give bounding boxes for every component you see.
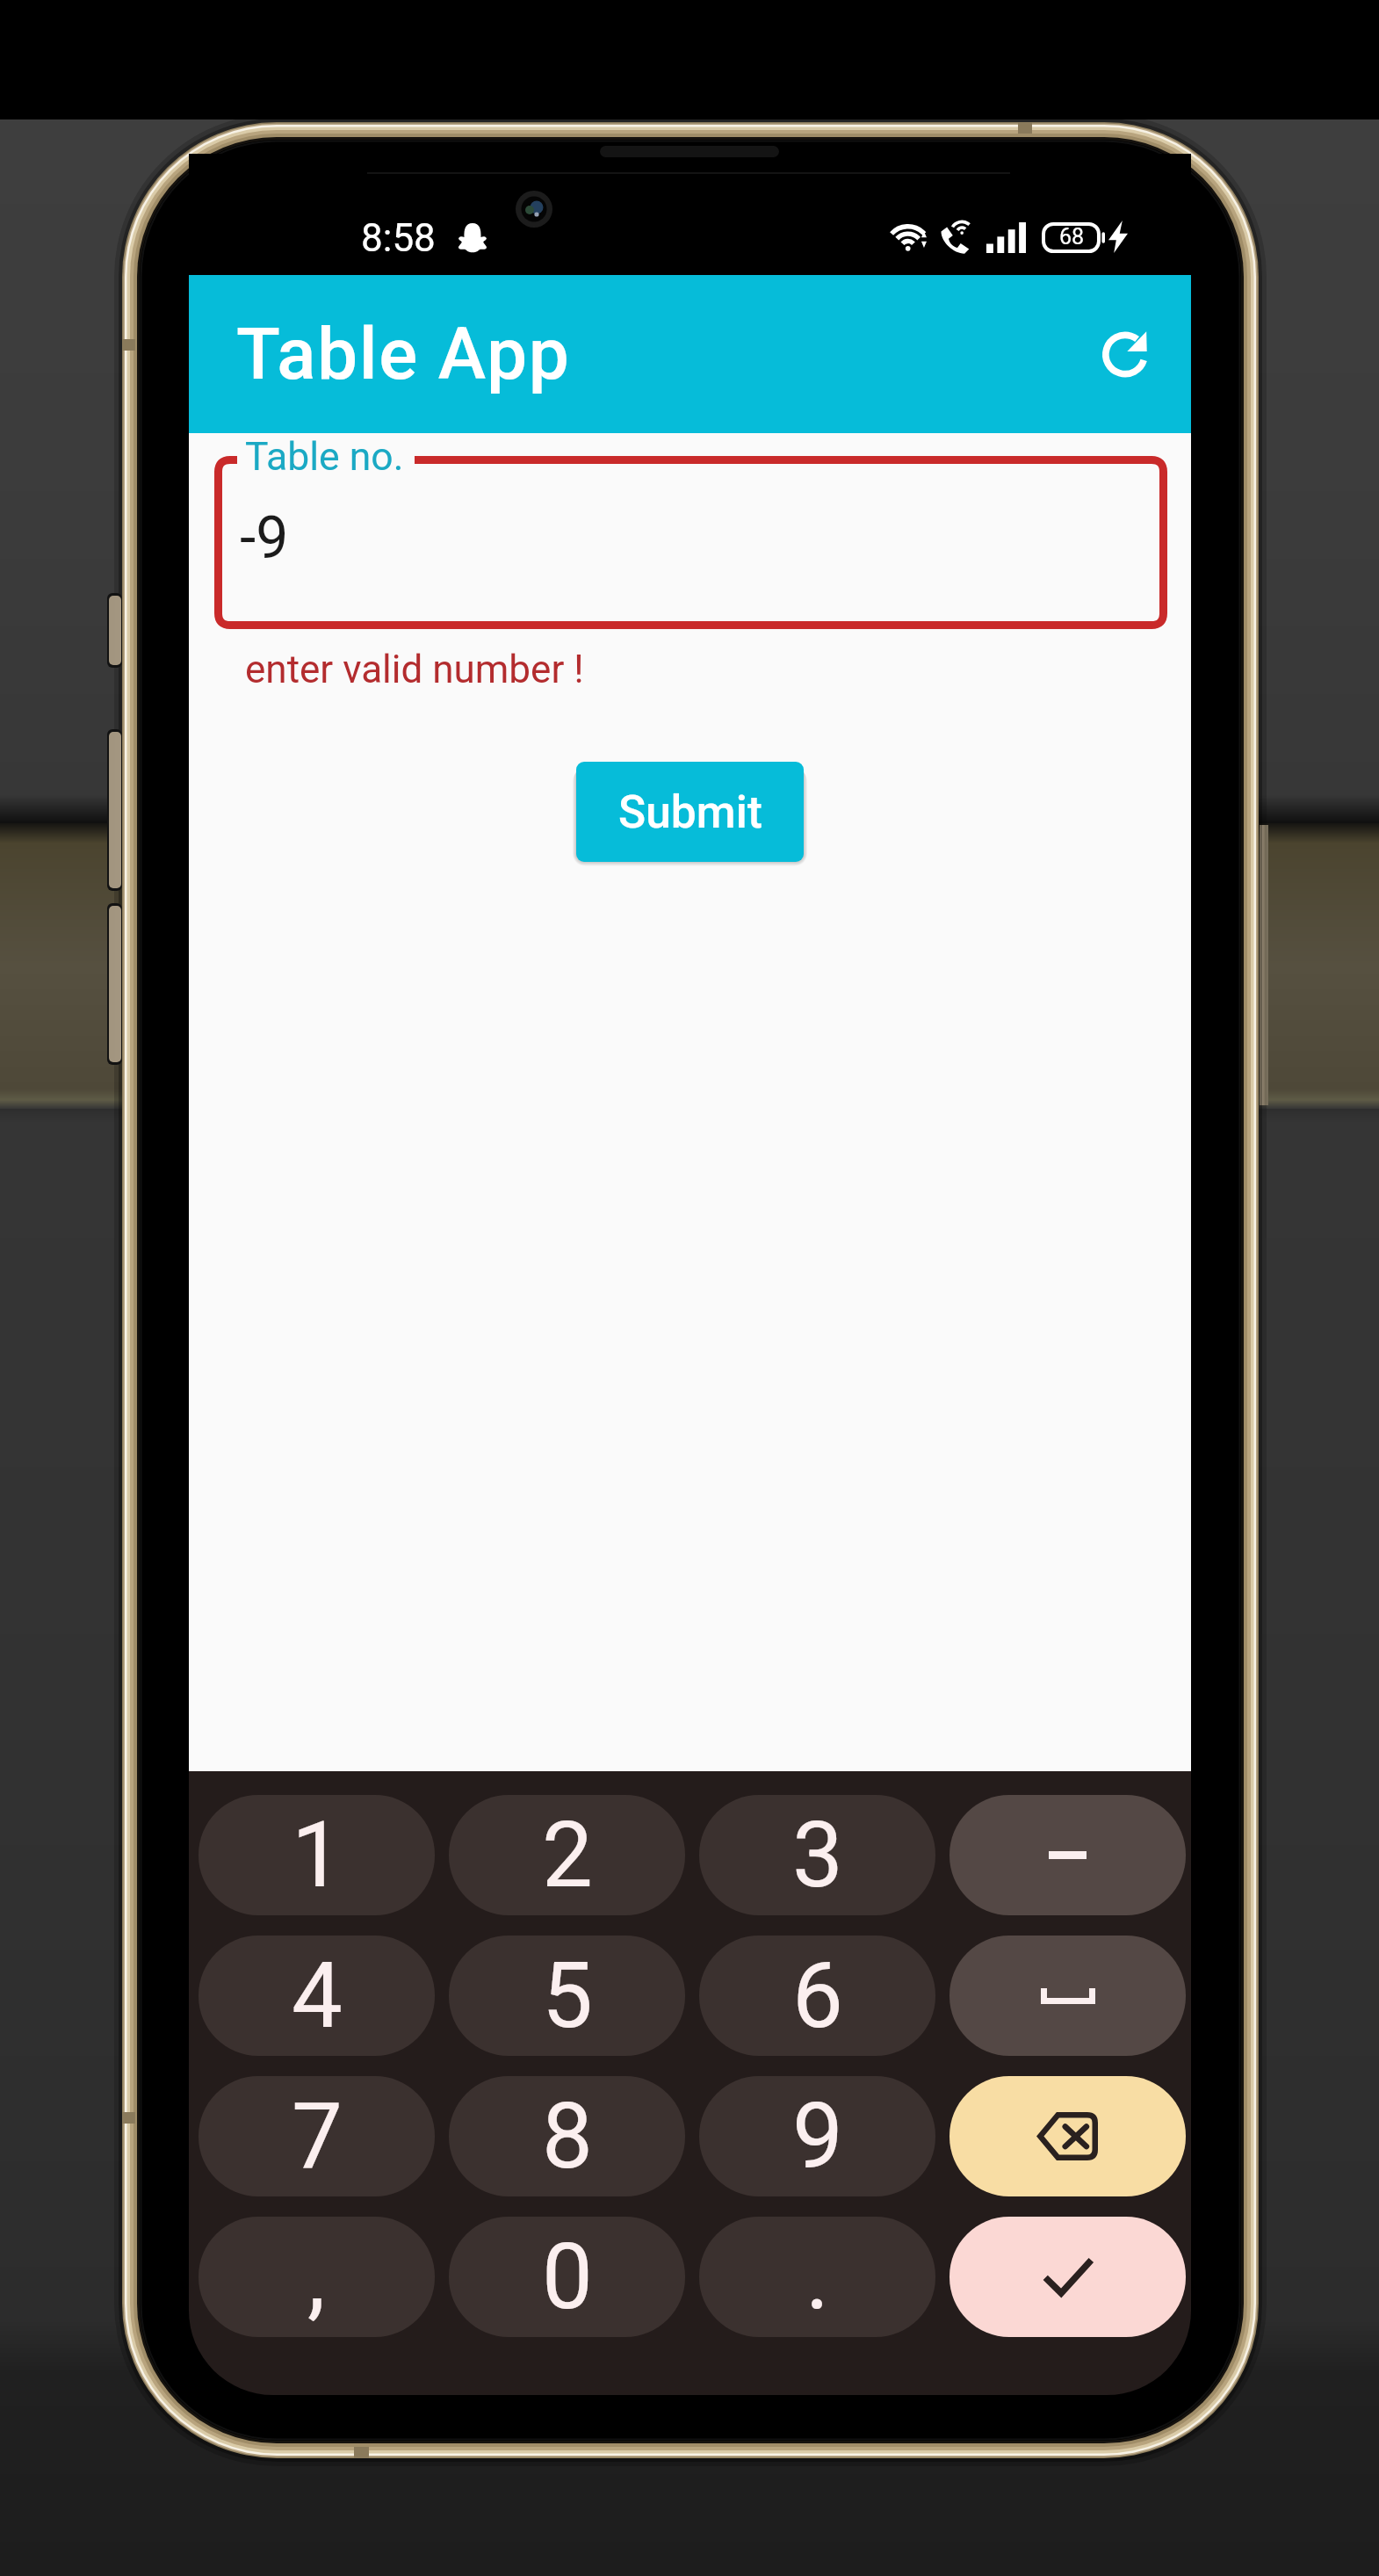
staticText: 8 [542, 2083, 593, 2189]
staticText: , [307, 2224, 326, 2330]
button[interactable]: , [199, 2217, 435, 2337]
staticText: 3 [792, 1802, 843, 1908]
staticText: Table App [236, 312, 571, 396]
staticText: 4 [292, 1943, 343, 2049]
button[interactable]: Minus [949, 1795, 1186, 1915]
staticText: Table no. [245, 434, 404, 480]
staticText: 0 [542, 2224, 593, 2330]
staticText: 8:58 [361, 215, 436, 261]
staticText: -9 [240, 504, 289, 572]
button[interactable]: 8 [449, 2076, 685, 2196]
staticText: 6 [792, 1943, 843, 2049]
button[interactable]: 6 [699, 1936, 935, 2056]
staticText: enter valid number ! [245, 647, 584, 692]
button[interactable]: 2 [449, 1795, 685, 1915]
staticText: . [805, 2224, 830, 2330]
staticText: 9 [792, 2083, 843, 2189]
staticText: 68 [1059, 224, 1085, 250]
staticText: 7 [292, 2083, 343, 2189]
button[interactable]: Space [949, 1936, 1186, 2056]
button[interactable]: Submit [576, 762, 804, 862]
button[interactable]: Backspace [949, 2076, 1186, 2196]
button[interactable]: 4 [199, 1936, 435, 2056]
staticText: 2 [542, 1802, 593, 1908]
button[interactable]: 9 [699, 2076, 935, 2196]
button[interactable]: 3 [699, 1795, 935, 1915]
button[interactable]: Enter [949, 2217, 1186, 2337]
staticText: 5 [542, 1943, 593, 2049]
staticText: Submit [618, 785, 762, 838]
button[interactable]: 1 [199, 1795, 435, 1915]
button[interactable]: . [699, 2217, 935, 2337]
button[interactable]: Table no. [214, 456, 1167, 629]
button[interactable]: 0 [449, 2217, 685, 2337]
button[interactable]: 5 [449, 1936, 685, 2056]
staticText: 1 [292, 1802, 343, 1908]
button[interactable]: Refresh [1066, 292, 1183, 416]
button[interactable]: 7 [199, 2076, 435, 2196]
